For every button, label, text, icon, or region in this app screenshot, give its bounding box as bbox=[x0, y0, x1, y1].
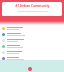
button[interactable] bbox=[2, 31, 62, 37]
button[interactable]: #1 Indian Community bbox=[2, 2, 62, 16]
staticText: #1 Indian Community bbox=[15, 4, 50, 8]
button[interactable]: Compose bbox=[28, 67, 32, 71]
staticText: Connect with people near you bbox=[17, 10, 48, 13]
button[interactable] bbox=[2, 43, 62, 49]
button[interactable] bbox=[2, 25, 62, 31]
button[interactable] bbox=[2, 37, 62, 43]
button[interactable] bbox=[2, 49, 62, 55]
button[interactable] bbox=[2, 55, 62, 61]
